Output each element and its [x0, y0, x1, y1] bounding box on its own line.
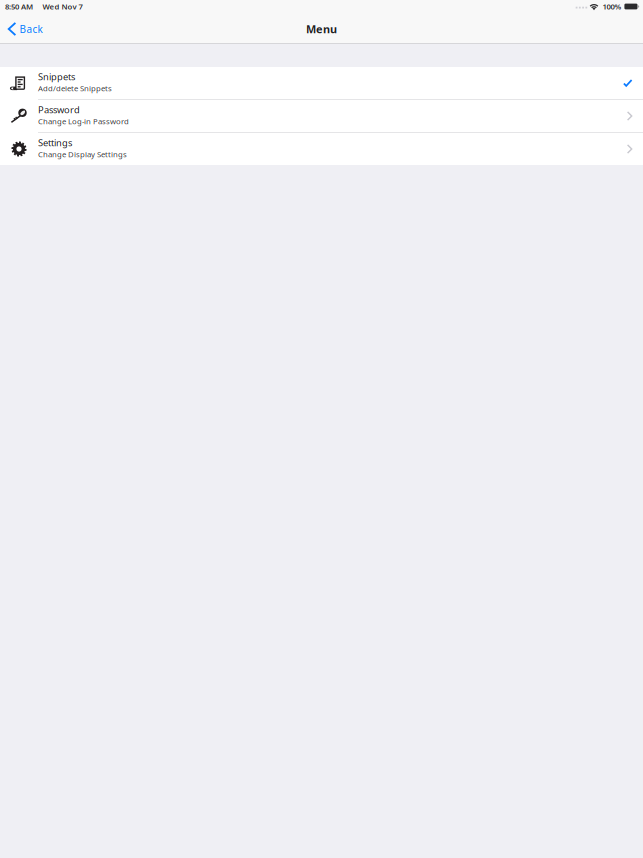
staticText: 100% — [602, 1, 621, 12]
staticText: Snippets — [38, 70, 75, 83]
staticText: Wed Nov 7 — [42, 1, 82, 12]
staticText: Change Display Settings — [38, 149, 127, 159]
staticText: Menu — [306, 22, 337, 36]
button[interactable]: Password — [0, 100, 643, 133]
button[interactable]: Back — [0, 19, 51, 39]
staticText: 8:50 AM — [5, 1, 33, 12]
staticText: Password — [38, 103, 80, 116]
staticText: Back — [19, 22, 42, 36]
button[interactable]: Settings — [0, 133, 643, 165]
button[interactable]: Snippets — [0, 67, 643, 100]
staticText: Add/delete Snippets — [38, 83, 112, 93]
staticText: Settings — [38, 136, 72, 149]
staticText: Change Log-in Password — [38, 116, 129, 126]
